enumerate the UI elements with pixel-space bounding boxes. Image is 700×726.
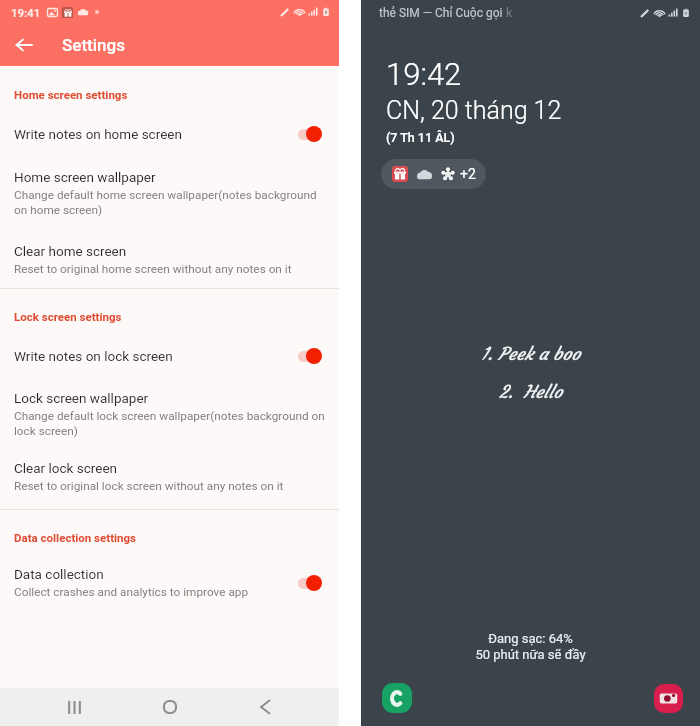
staticText: Home screen settings [14, 88, 128, 101]
button[interactable]: Write notes on home screen [0, 112, 339, 156]
staticText: Data collection settings [14, 531, 137, 544]
staticText: Data collection [14, 566, 104, 582]
staticText: Settings [62, 35, 125, 55]
staticText: 50 phút nữa sẽ đầy [475, 647, 586, 662]
button[interactable]: Back [2, 24, 46, 66]
staticText: Change default home screen wallpaper(not… [14, 188, 326, 217]
button[interactable]: Phone [382, 683, 412, 713]
button[interactable]: Write notes on lock screen [0, 334, 339, 378]
staticText: Clear lock screen [14, 460, 117, 476]
staticText: Lock screen settings [14, 310, 122, 323]
staticText: CN, 20 tháng 12 [386, 96, 562, 125]
staticText: k [506, 6, 513, 20]
staticText: Lock screen wallpaper [14, 390, 149, 406]
button[interactable]: Back [243, 688, 287, 726]
staticText: Reset to original home screen without an… [14, 262, 292, 276]
staticText: (7 Th 11 ÂL) [386, 130, 455, 145]
staticText: +2 [460, 166, 476, 182]
button[interactable]: Data collection [0, 564, 339, 603]
staticText: Collect crashes and analytics to improve… [14, 585, 249, 599]
button[interactable]: Clear home screen [0, 241, 339, 280]
button[interactable]: Recents [52, 688, 96, 726]
staticText: Change default lock screen wallpaper(not… [14, 409, 326, 438]
button[interactable]: Lock screen wallpaper [0, 388, 339, 442]
button[interactable]: Home screen wallpaper [0, 167, 339, 221]
staticText: Write notes on lock screen [14, 348, 298, 364]
button[interactable]: Clear lock screen [0, 458, 339, 497]
staticText: 2. Hello [499, 381, 563, 403]
staticText: 19:41 [11, 6, 41, 19]
staticText: 1. Peek a boo [481, 343, 581, 365]
staticText: Home screen wallpaper [14, 169, 156, 185]
staticText: 19:42 [386, 56, 462, 92]
button[interactable]: Home [148, 688, 192, 726]
staticText: Đang sạc: 64% [488, 631, 573, 646]
staticText: Write notes on home screen [14, 126, 298, 142]
staticText: Clear home screen [14, 243, 127, 259]
staticText: Reset to original lock screen without an… [14, 479, 284, 493]
button[interactable]: Camera [654, 684, 683, 713]
staticText: thẻ SIM — Chỉ Cuộc gọi [379, 6, 506, 20]
button[interactable]: +2 [381, 159, 486, 189]
